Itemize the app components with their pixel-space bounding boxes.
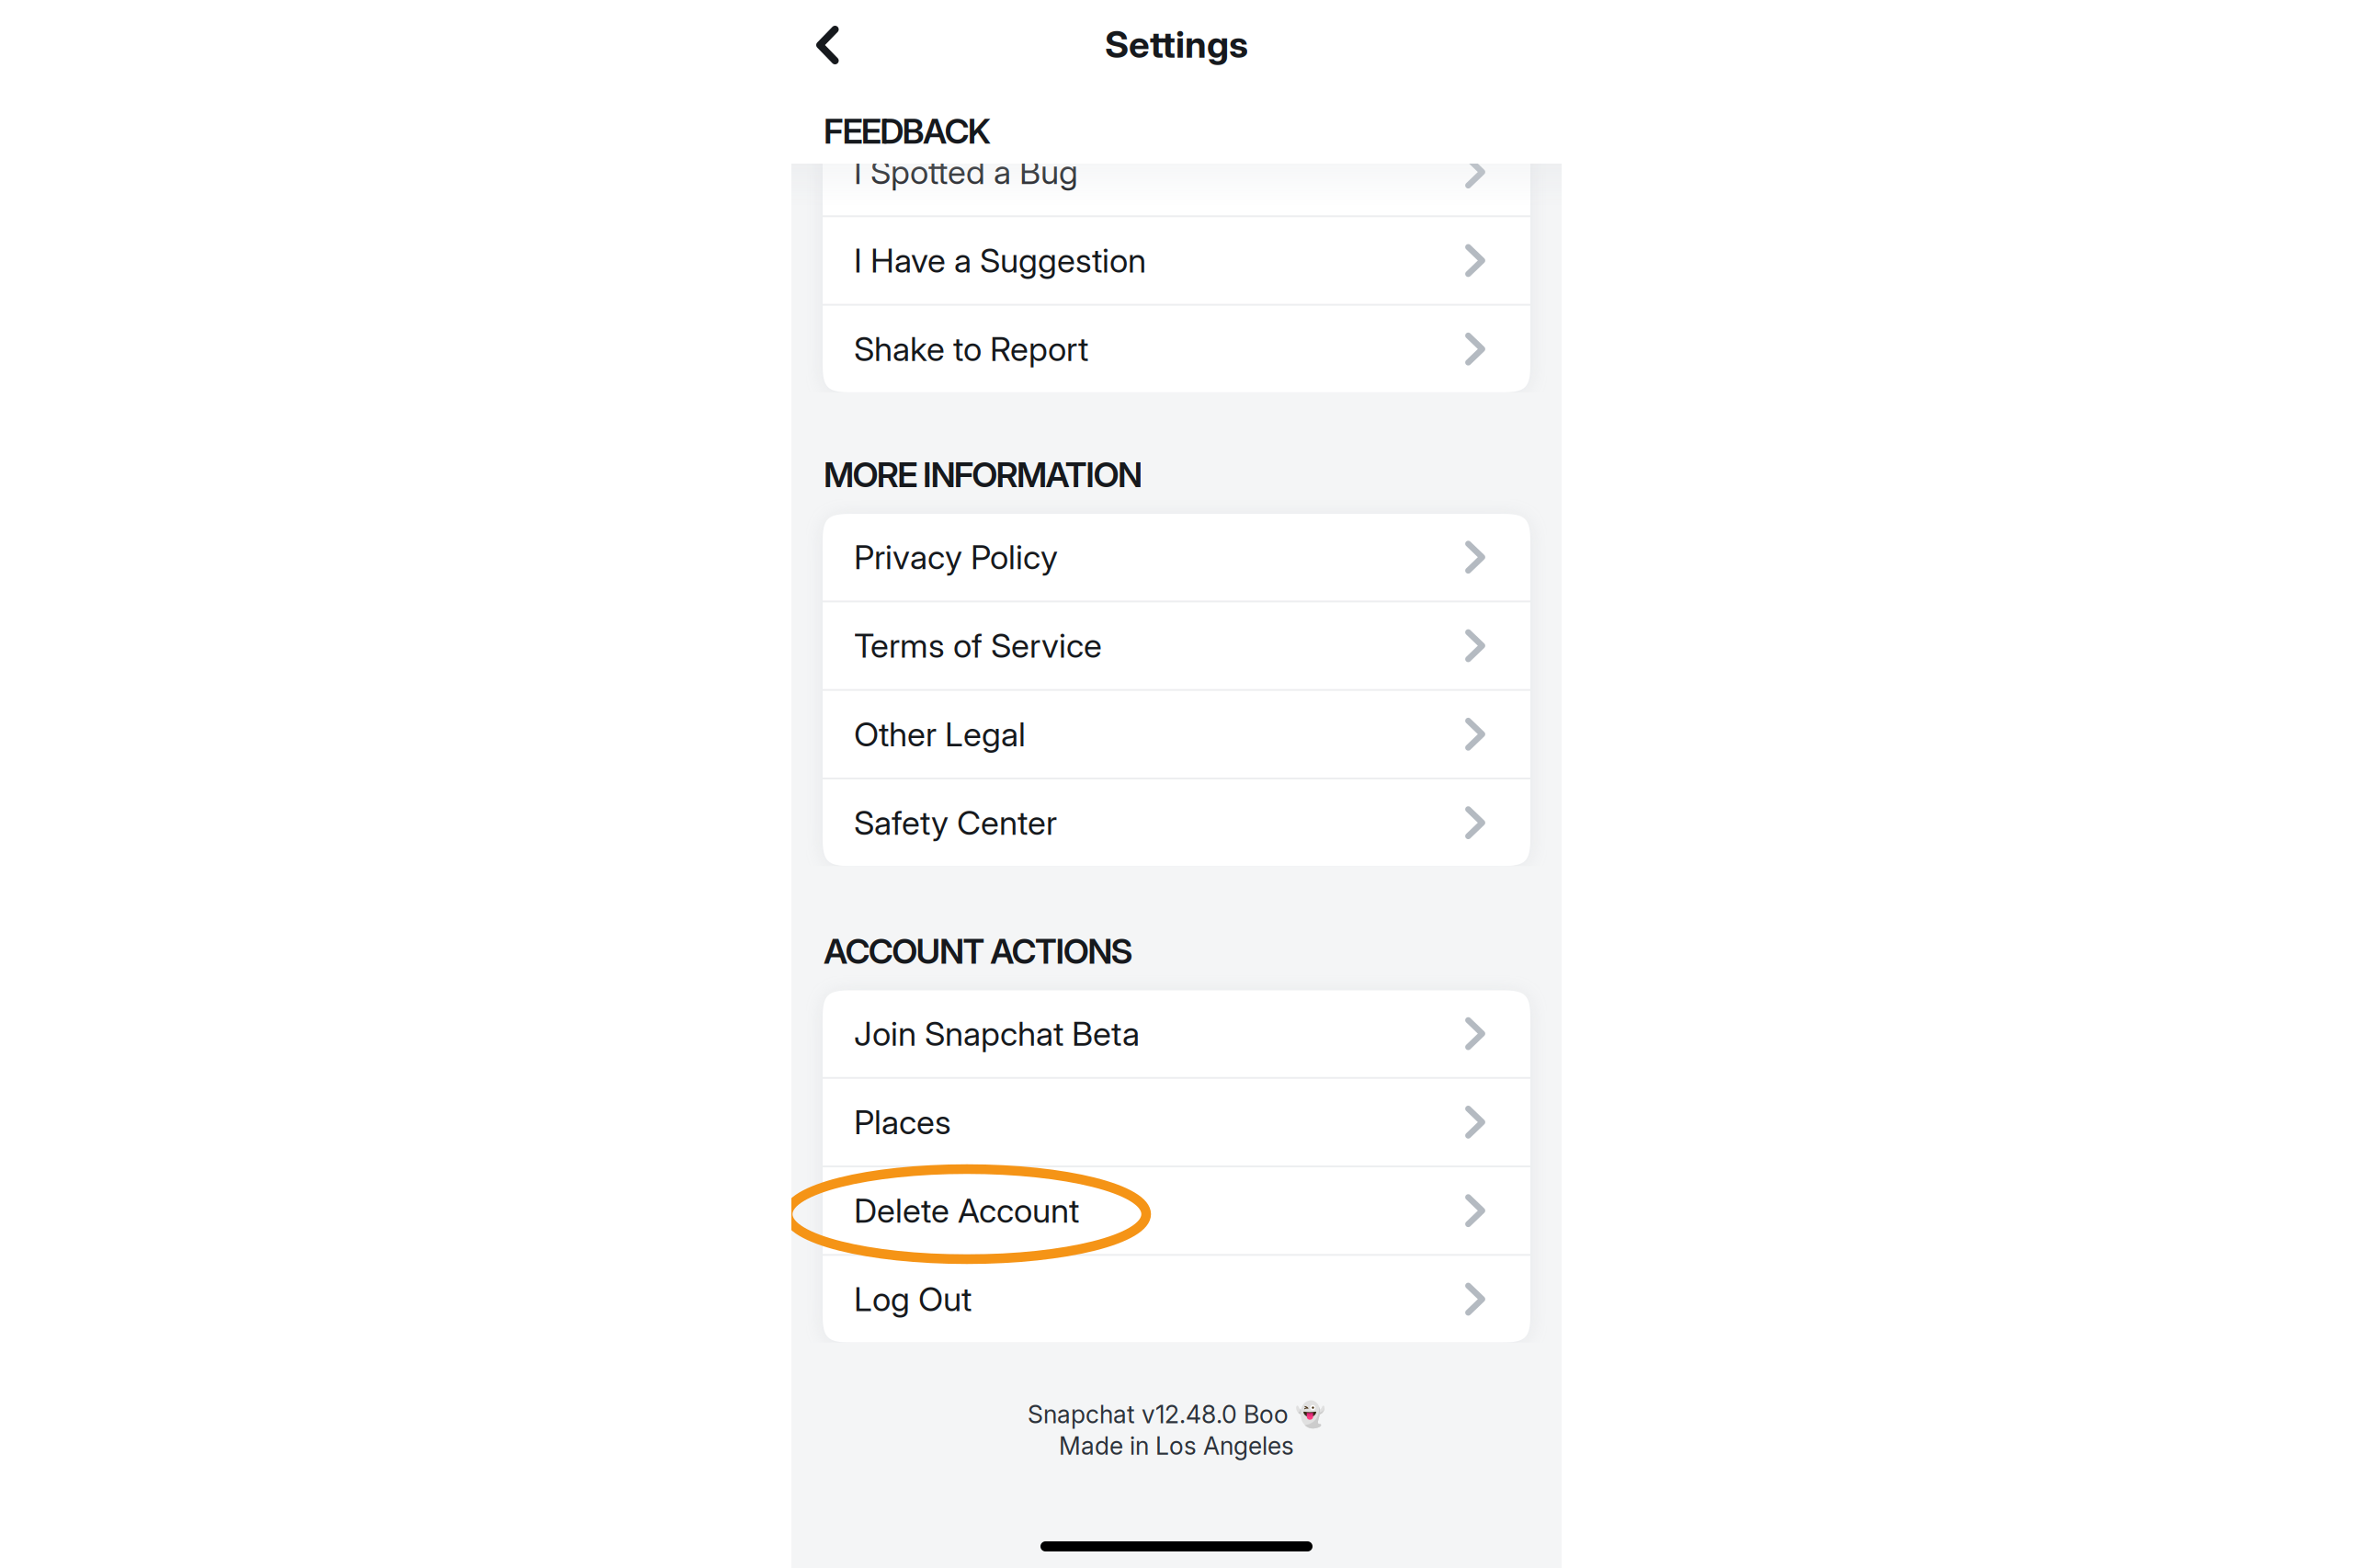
button[interactable]: Log Out (823, 1256, 1530, 1342)
button[interactable]: Delete Account (823, 1167, 1530, 1254)
button[interactable]: Back (794, 11, 860, 79)
staticText: Made in Los Angeles (1059, 1431, 1294, 1461)
staticText: Privacy Policy (854, 537, 1058, 577)
button[interactable]: I Have a Suggestion (823, 217, 1530, 304)
button[interactable]: Shake to Report (823, 306, 1530, 392)
button[interactable]: I Spotted a Bug (823, 129, 1530, 215)
staticText: Places (854, 1102, 951, 1142)
staticText: I Spotted a Bug (854, 152, 1078, 192)
staticText: MORE INFORMATION (824, 454, 1142, 495)
button[interactable]: Join Snapchat Beta (823, 990, 1530, 1077)
staticText: ACCOUNT ACTIONS (824, 930, 1133, 972)
staticText: Safety Center (854, 803, 1057, 843)
staticText: Settings (1105, 22, 1248, 67)
button[interactable]: Terms of Service (823, 602, 1530, 689)
staticText: Delete Account (854, 1191, 1079, 1231)
button[interactable]: Other Legal (823, 691, 1530, 778)
button[interactable]: Places (823, 1079, 1530, 1165)
button[interactable]: Safety Center (823, 779, 1530, 866)
staticText: I Have a Suggestion (854, 241, 1146, 281)
button[interactable]: Privacy Policy (823, 514, 1530, 601)
staticText: Join Snapchat Beta (854, 1014, 1140, 1054)
staticText: Snapchat v12.48.0 Boo 👻 (1028, 1399, 1325, 1429)
staticText: Other Legal (854, 714, 1026, 754)
staticText: Terms of Service (854, 626, 1102, 666)
staticText: Shake to Report (854, 329, 1088, 369)
staticText: FEEDBACK (824, 110, 991, 152)
staticText: Log Out (854, 1279, 972, 1319)
